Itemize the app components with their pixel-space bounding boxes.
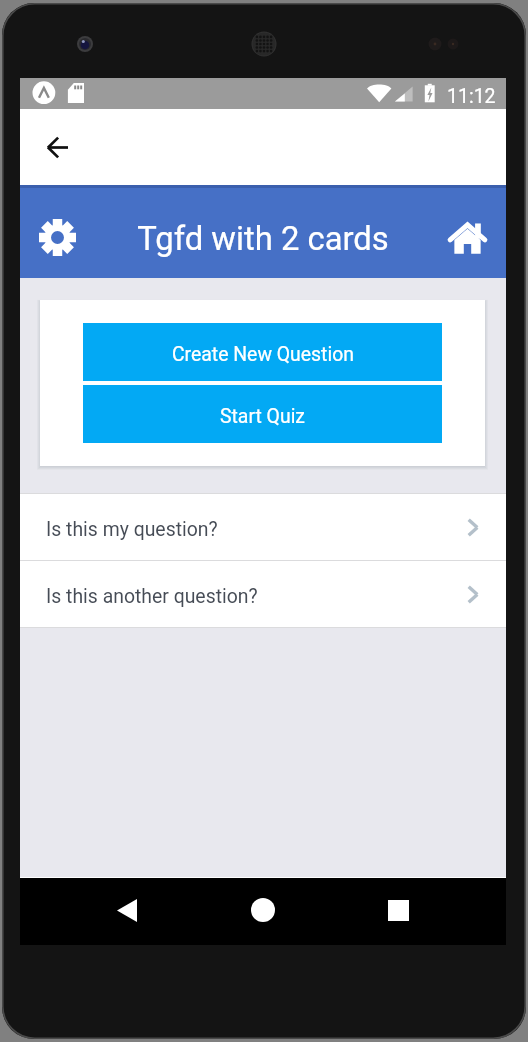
- button[interactable]: Is this my question?: [20, 494, 506, 560]
- staticText: Is this my question?: [46, 518, 218, 541]
- staticText: Create New Question: [172, 343, 354, 366]
- button[interactable]: Navigate up: [33, 123, 81, 171]
- button[interactable]: Is this another question?: [20, 561, 506, 627]
- staticText: Start Quiz: [220, 405, 305, 428]
- button[interactable]: Home: [449, 223, 486, 254]
- button[interactable]: Recent apps: [376, 888, 420, 932]
- staticText: Is this another question?: [46, 585, 258, 608]
- staticText: 11:12: [447, 85, 496, 108]
- staticText: Tgfd with 2 cards: [137, 220, 389, 258]
- button[interactable]: Settings: [39, 219, 76, 256]
- button[interactable]: Start Quiz: [83, 385, 442, 443]
- button[interactable]: Create New Question: [83, 323, 442, 381]
- button[interactable]: Back: [105, 888, 149, 932]
- button[interactable]: Home: [241, 888, 285, 932]
